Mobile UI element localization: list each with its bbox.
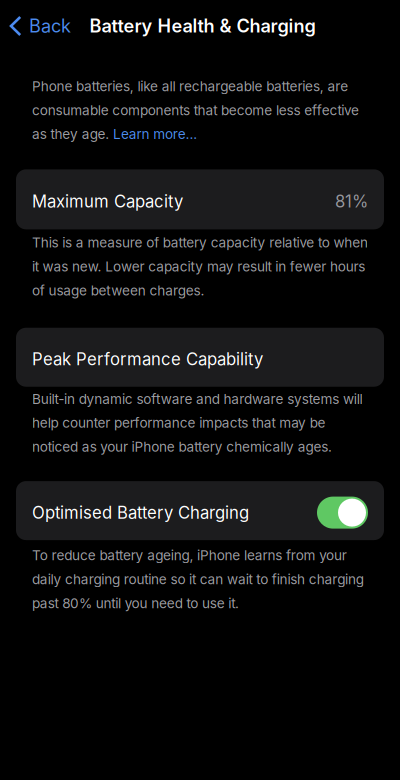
staticText: Built-in dynamic software and hardware s… — [32, 391, 362, 455]
staticText: Back — [29, 15, 71, 37]
staticText: Battery Health & Charging — [89, 15, 315, 37]
button[interactable]: Back — [0, 6, 81, 46]
staticText: Maximum Capacity — [32, 191, 183, 211]
button[interactable]: Optimised Battery Charging — [317, 497, 368, 529]
staticText: Peak Performance Capability — [32, 349, 263, 369]
button[interactable]: Optimised Battery Charging — [16, 481, 384, 540]
staticText: Optimised Battery Charging — [32, 502, 249, 523]
staticText: 81% — [335, 191, 368, 211]
staticText: Phone batteries, like all rechargeable b… — [32, 78, 359, 142]
staticText: To reduce battery ageing, iPhone learns … — [32, 547, 364, 611]
button[interactable]: Maximum Capacity — [16, 169, 384, 229]
staticText: This is a measure of battery capacity re… — [32, 234, 368, 299]
button[interactable]: Peak Performance Capability — [16, 328, 384, 387]
